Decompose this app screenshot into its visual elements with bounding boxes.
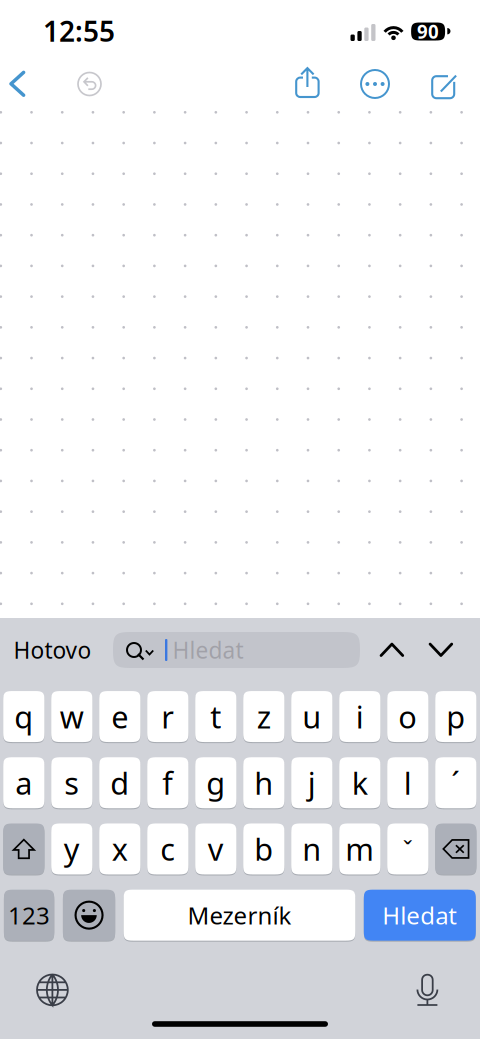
button[interactable]: Shift: [3, 823, 44, 875]
staticText: y: [64, 829, 80, 869]
staticText: p: [446, 696, 465, 737]
button[interactable]: ˇ: [387, 823, 428, 875]
staticText: s: [64, 762, 79, 803]
button[interactable]: Share: [284, 61, 330, 107]
staticText: a: [15, 762, 32, 803]
staticText: v: [208, 829, 224, 869]
button[interactable]: e: [99, 690, 140, 743]
button[interactable]: Next result: [418, 628, 464, 672]
button[interactable]: j: [291, 757, 332, 809]
staticText: u: [302, 696, 321, 737]
staticText: t: [210, 696, 221, 737]
button[interactable]: Emoji: [63, 889, 115, 941]
button[interactable]: y: [51, 823, 92, 875]
staticText: r: [161, 696, 174, 737]
button[interactable]: r: [147, 690, 188, 743]
button[interactable]: Dictate: [402, 965, 452, 1015]
staticText: g: [206, 762, 225, 803]
button[interactable]: l: [387, 757, 428, 809]
button[interactable]: b: [243, 823, 284, 875]
button[interactable]: h: [243, 757, 284, 809]
button[interactable]: w: [51, 690, 92, 743]
button[interactable]: ´: [435, 757, 476, 809]
staticText: i: [356, 696, 364, 737]
button[interactable]: d: [99, 757, 140, 809]
staticText: ˇ: [403, 833, 413, 865]
button[interactable]: x: [99, 823, 140, 875]
button[interactable]: Delete: [435, 823, 476, 875]
button[interactable]: Undo: [66, 61, 112, 107]
staticText: Hotovo: [13, 635, 91, 665]
button[interactable]: More: [352, 61, 398, 107]
staticText: h: [254, 762, 273, 803]
button[interactable]: a: [3, 757, 44, 809]
button[interactable]: p: [435, 690, 476, 743]
button[interactable]: s: [51, 757, 92, 809]
button[interactable]: u: [291, 690, 332, 743]
staticText: ´: [451, 762, 460, 803]
staticText: d: [110, 762, 129, 803]
button[interactable]: g: [195, 757, 236, 809]
button[interactable]: q: [3, 690, 44, 743]
staticText: c: [160, 829, 175, 869]
staticText: 123: [8, 899, 50, 931]
button[interactable]: Compose: [421, 61, 467, 107]
button[interactable]: Back: [0, 61, 41, 107]
staticText: w: [60, 696, 84, 737]
button[interactable]: m: [339, 823, 380, 875]
staticText: q: [14, 696, 33, 737]
button[interactable]: i: [339, 690, 380, 743]
button[interactable]: c: [147, 823, 188, 875]
button[interactable]: Hledat: [364, 889, 476, 941]
staticText: 90: [417, 19, 439, 44]
staticText: n: [302, 829, 321, 869]
button[interactable]: o: [387, 690, 428, 743]
button[interactable]: v: [195, 823, 236, 875]
staticText: l: [404, 762, 412, 803]
staticText: Hledat: [172, 635, 243, 665]
staticText: Mezerník: [187, 899, 291, 931]
staticText: f: [162, 762, 173, 803]
staticText: b: [254, 829, 273, 869]
staticText: o: [398, 696, 417, 737]
staticText: x: [112, 829, 128, 869]
staticText: 12:55: [43, 12, 115, 50]
button[interactable]: z: [243, 690, 284, 743]
button[interactable]: Mezerník: [124, 889, 355, 941]
staticText: m: [345, 829, 374, 869]
staticText: k: [352, 762, 368, 803]
button[interactable]: f: [147, 757, 188, 809]
button[interactable]: Previous result: [369, 628, 415, 672]
button[interactable]: 123: [4, 889, 54, 941]
staticText: e: [111, 696, 128, 737]
staticText: z: [257, 696, 271, 737]
button[interactable]: Hotovo: [6, 628, 98, 672]
staticText: j: [308, 762, 316, 803]
button[interactable]: t: [195, 690, 236, 743]
button[interactable]: n: [291, 823, 332, 875]
button[interactable]: Switch keyboard: [27, 965, 77, 1015]
button[interactable]: k: [339, 757, 380, 809]
staticText: Hledat: [382, 899, 457, 931]
